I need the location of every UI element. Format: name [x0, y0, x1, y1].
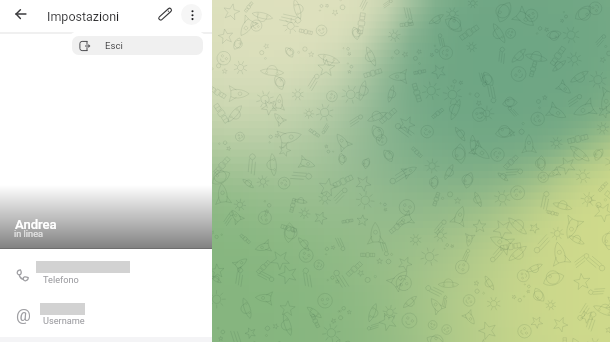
button[interactable]: @	[0, 298, 212, 338]
button[interactable]: Telefono	[0, 256, 212, 296]
staticText: Andrea	[15, 217, 57, 232]
staticText: in linea	[14, 228, 43, 239]
staticText: Impostazioni	[47, 9, 120, 24]
staticText: Username	[43, 315, 85, 326]
button[interactable]: Back	[9, 2, 33, 26]
staticText: Telefono	[43, 274, 79, 285]
button[interactable]: Edit	[153, 2, 177, 26]
staticText: @	[16, 306, 31, 325]
button[interactable]: Esci	[72, 36, 203, 55]
button[interactable]: More options	[181, 4, 202, 25]
staticText: Esci	[105, 40, 123, 51]
